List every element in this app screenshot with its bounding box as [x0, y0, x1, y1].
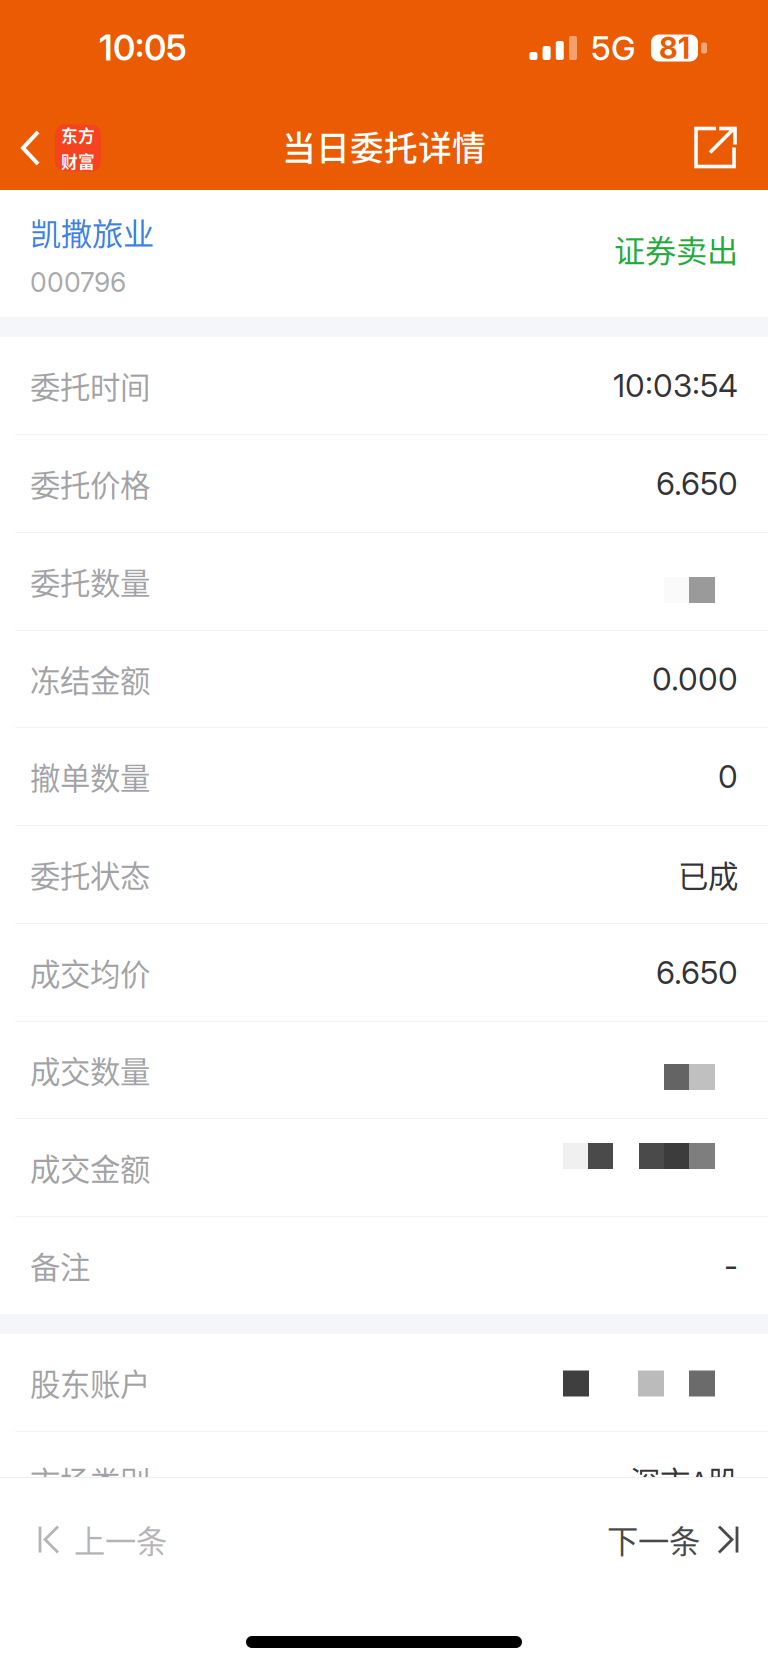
staticText: 委托状态 — [30, 852, 150, 896]
button[interactable]: Share — [666, 96, 768, 190]
staticText: 6.650 — [656, 953, 738, 992]
button[interactable]: 下一条 — [577, 1478, 768, 1601]
staticText: 深市A股 — [630, 1458, 738, 1502]
staticText: 下一条 — [607, 1517, 700, 1562]
staticText: 成交金额 — [30, 1145, 150, 1189]
staticText: 股东账户 — [30, 1360, 150, 1404]
staticText: 81 — [659, 30, 690, 66]
staticText: 市场类别 — [30, 1458, 150, 1502]
staticText: 0.000 — [652, 660, 738, 698]
staticText: 已成 — [678, 852, 738, 896]
staticText: 10:03:54 — [613, 366, 738, 405]
staticText: 冻结金额 — [30, 657, 150, 701]
staticText: 委托价格 — [30, 461, 150, 505]
staticText: 委托数量 — [30, 559, 150, 603]
staticText: 0 — [718, 757, 738, 796]
staticText: 6.650 — [656, 464, 738, 503]
staticText: 5G — [591, 28, 636, 68]
staticText: 000796 — [30, 266, 126, 298]
staticText: 撤单数量 — [30, 754, 150, 798]
staticText: 东方 — [61, 123, 95, 147]
staticText: 成交均价 — [30, 950, 150, 994]
staticText: 当日委托详情 — [282, 122, 486, 170]
staticText: - — [724, 1246, 738, 1285]
staticText: 委托时间 — [30, 363, 150, 407]
button[interactable]: Back — [0, 96, 113, 190]
button[interactable]: 上一条 — [0, 1478, 197, 1601]
staticText: 财富 — [61, 149, 95, 173]
staticText: 证券卖出 — [614, 226, 738, 271]
staticText: 成交数量 — [30, 1048, 150, 1092]
staticText: 上一条 — [74, 1517, 167, 1562]
staticText: 10:05 — [99, 27, 187, 69]
staticText: 凯撒旅业 — [30, 209, 154, 254]
staticText: 备注 — [30, 1243, 90, 1287]
